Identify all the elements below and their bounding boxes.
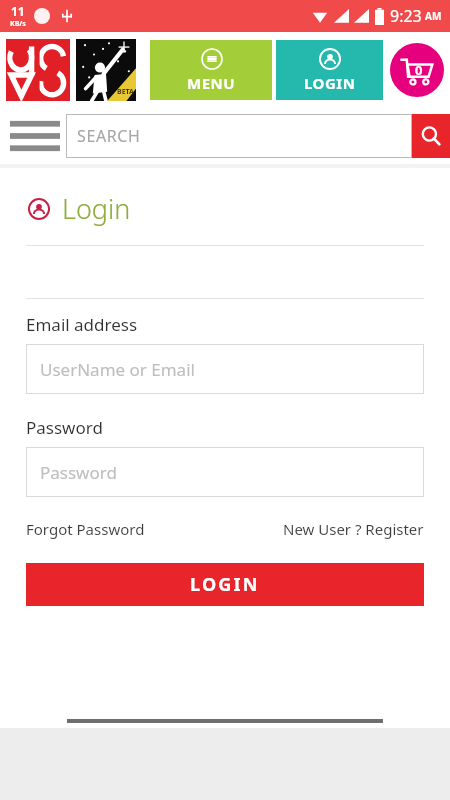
button[interactable]: Beta banner — [76, 39, 136, 101]
staticText: LOGIN — [304, 73, 356, 93]
staticText: 11 — [11, 3, 25, 19]
button[interactable]: LOGIN — [26, 563, 424, 606]
button[interactable]: Password — [26, 447, 424, 497]
button[interactable]: Home logo — [6, 39, 70, 101]
staticText: LOGIN — [190, 572, 260, 597]
staticText: AM — [425, 9, 442, 23]
staticText: UserName or Email — [40, 358, 195, 381]
staticText: BETA — [117, 87, 134, 97]
button[interactable]: Open navigation menu — [8, 114, 62, 158]
staticText: SEARCH — [77, 125, 141, 147]
staticText: 9:23 — [390, 5, 422, 27]
button[interactable]: SEARCH — [66, 114, 412, 158]
button[interactable]: Search — [412, 114, 450, 158]
staticText: MENU — [187, 73, 236, 93]
staticText: 0 — [415, 61, 423, 79]
staticText: Password — [40, 461, 117, 484]
staticText: Email address — [26, 313, 138, 336]
staticText: Password — [26, 416, 103, 439]
staticText: Login — [62, 190, 131, 227]
button[interactable]: Forgot Password — [26, 519, 145, 539]
button[interactable]: New User ? Register — [283, 519, 424, 539]
button[interactable]: UserName or Email — [26, 344, 424, 394]
button[interactable]: MENU — [150, 40, 272, 100]
button[interactable]: LOGIN — [276, 40, 383, 100]
staticText: KB/s — [10, 19, 26, 29]
button[interactable]: Login — [26, 190, 131, 227]
staticText: Forgot Password — [26, 519, 145, 539]
staticText: New User ? Register — [283, 519, 424, 539]
button[interactable]: Cart, 0 items — [390, 43, 444, 97]
